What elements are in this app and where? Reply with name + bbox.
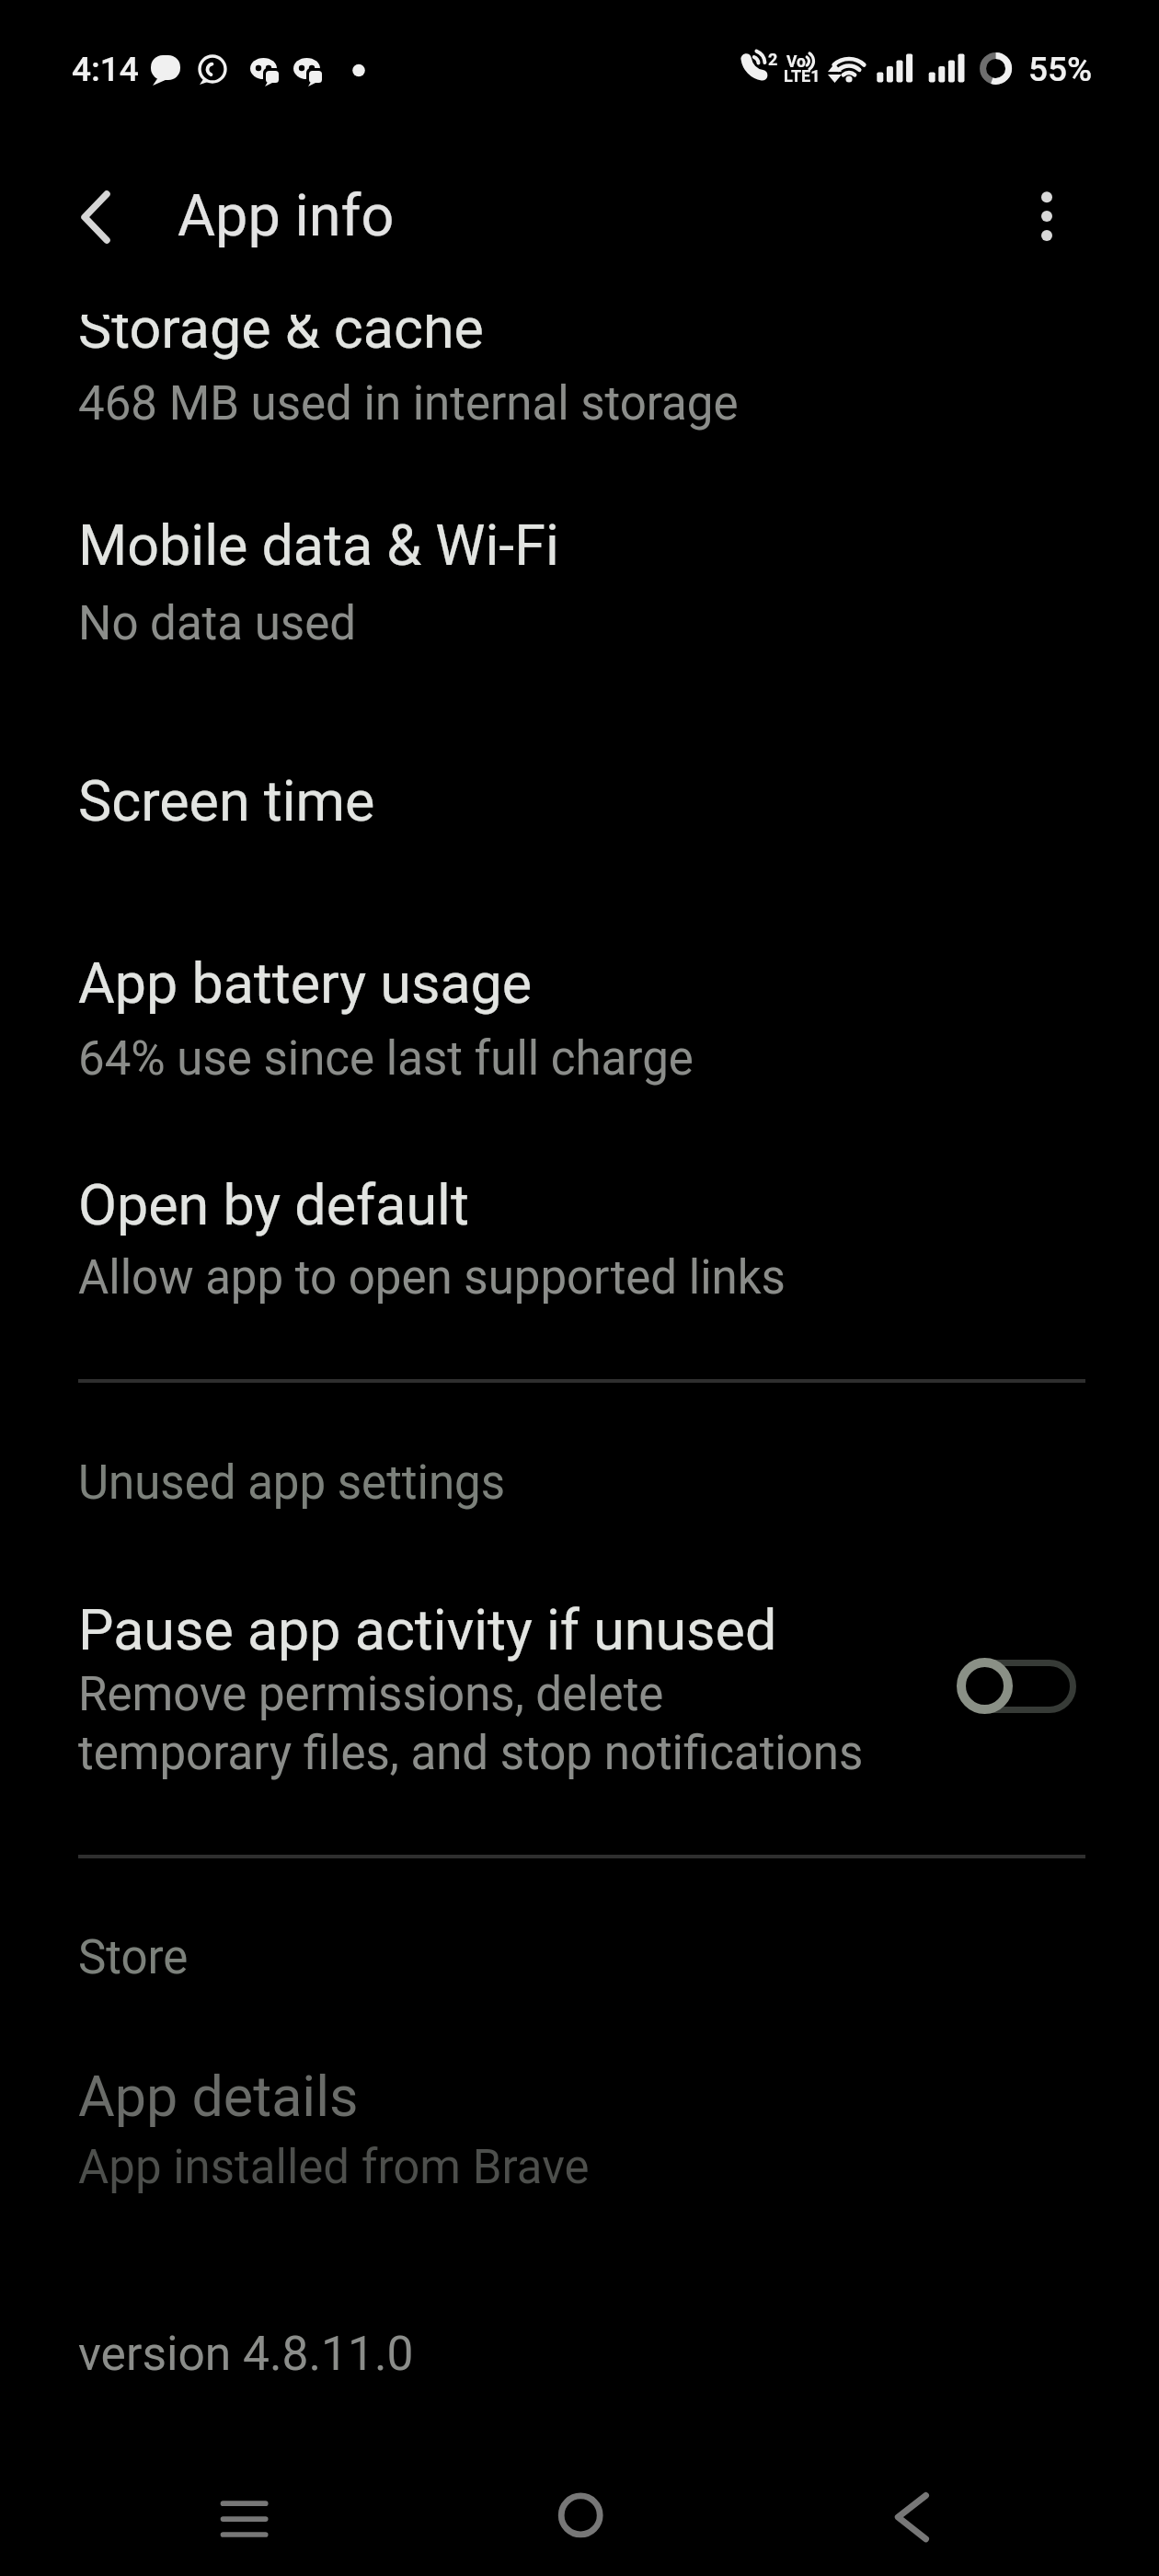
staticText: App battery usage <box>78 950 533 1016</box>
staticText: Open by default <box>78 1172 469 1237</box>
staticText: Store <box>78 1930 189 1985</box>
staticText: 4:14 <box>72 50 139 89</box>
button[interactable]: App battery usage <box>0 920 1159 1118</box>
staticText: App details <box>78 2064 359 2129</box>
button[interactable] <box>856 2462 967 2572</box>
staticText: temporary files, and stop notifications <box>78 1726 864 1781</box>
staticText: 64% use since last full charge <box>78 1031 694 1087</box>
staticText: Allow app to open supported links <box>78 1250 786 1305</box>
staticText: LTE1 <box>784 66 820 86</box>
staticText: Storage & cache <box>78 315 484 361</box>
button[interactable]: Pause app activity if unused <box>0 1564 1159 1808</box>
staticText: version 4.8.11.0 <box>78 2326 414 2381</box>
staticText: Screen time <box>78 768 375 834</box>
staticText: Mobile data & Wi-Fi <box>78 512 559 578</box>
staticText: 468 MB used in internal storage <box>78 376 739 431</box>
staticText: No data used <box>78 596 356 651</box>
button[interactable]: Storage & cache <box>0 315 1159 462</box>
staticText: Pause app activity if unused <box>78 1597 777 1662</box>
button[interactable] <box>1017 180 1076 250</box>
staticText: App info <box>178 182 395 250</box>
staticText: 55% <box>1028 50 1093 89</box>
staticText: App installed from Brave <box>78 2140 590 2195</box>
button[interactable] <box>64 189 123 247</box>
staticText: Remove permissions, delete <box>78 1667 664 1722</box>
button[interactable]: Mobile data & Wi-Fi <box>0 483 1159 676</box>
staticText: Vo <box>786 52 806 72</box>
staticText: 2 <box>768 50 778 69</box>
button[interactable]: Screen time <box>0 727 1159 865</box>
button[interactable] <box>189 2464 300 2574</box>
button[interactable] <box>525 2460 636 2570</box>
staticText: Unused app settings <box>78 1455 506 1511</box>
button[interactable]: Open by default <box>0 1141 1159 1339</box>
